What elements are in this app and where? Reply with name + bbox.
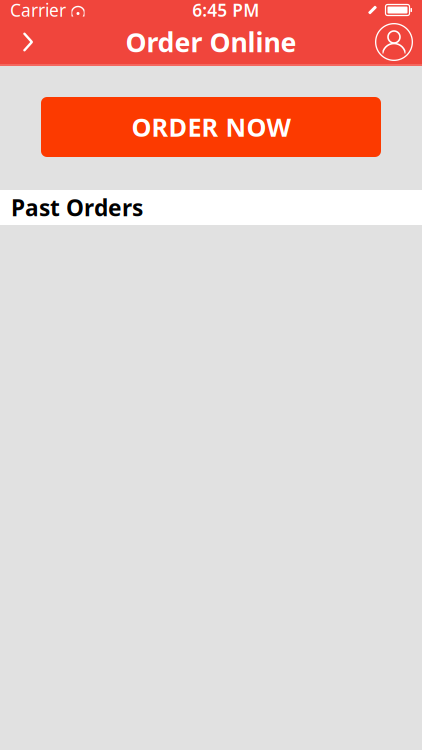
button[interactable]: Profile bbox=[372, 20, 416, 64]
button[interactable]: ORDER NOW bbox=[41, 97, 381, 157]
staticText: Past Orders bbox=[11, 192, 143, 222]
staticText: Order Online bbox=[125, 24, 296, 60]
staticText: ORDER NOW bbox=[131, 110, 290, 144]
button[interactable]: Back bbox=[6, 20, 50, 64]
staticText: Carrier bbox=[10, 0, 66, 21]
staticText: 6:45 PM bbox=[192, 0, 259, 21]
